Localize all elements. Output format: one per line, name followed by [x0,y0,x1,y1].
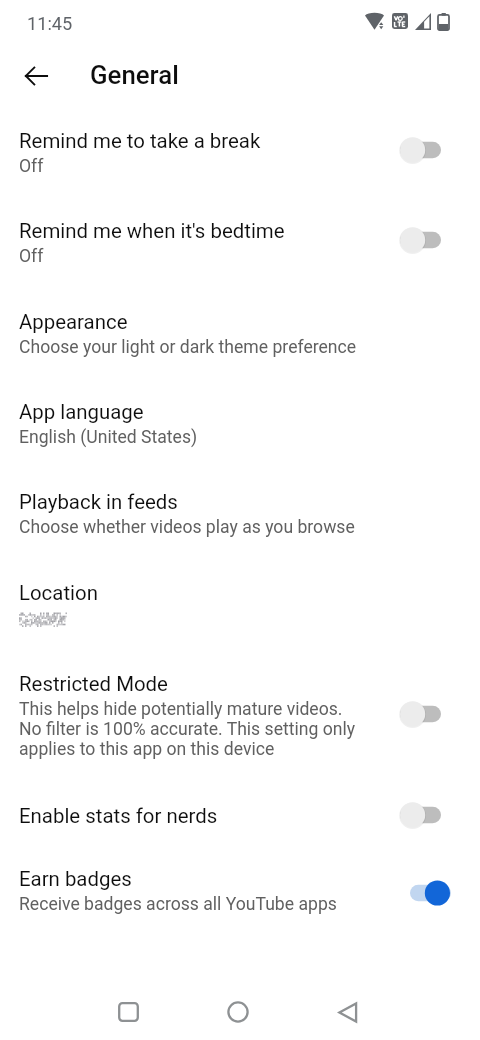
button[interactable]: Back [312,984,385,1040]
button[interactable]: Enable stats for nerds [0,776,480,839]
button[interactable]: Remind me to take a break [0,101,480,191]
staticText: Remind me when it's bedtime [19,219,285,243]
staticText: Restricted Mode [19,672,168,696]
staticText: English (United States) [19,427,198,448]
staticText: Earn badges [19,867,132,891]
button[interactable]: Recent apps [92,984,165,1040]
staticText: General [90,60,179,90]
button[interactable]: Off [392,796,458,834]
staticText: 11:45 [27,13,73,34]
button[interactable]: On [392,874,458,912]
staticText: Off [19,156,44,177]
button[interactable]: Home [201,984,274,1040]
staticText: Location [19,581,98,605]
button[interactable]: Playback in feeds [0,462,480,553]
staticText: Receive badges across all YouTube apps [19,894,337,915]
button[interactable]: Appearance [0,282,480,372]
staticText: Appearance [19,310,128,334]
staticText: Off [19,246,44,267]
button[interactable]: Off [392,695,458,733]
staticText: This helps hide potentially mature video… [19,699,356,759]
staticText: Choose your light or dark theme preferen… [19,337,357,358]
staticText: App language [19,400,144,424]
button[interactable]: App language [0,372,480,462]
button[interactable]: Location [0,553,480,644]
staticText: Enable stats for nerds [19,804,218,828]
button[interactable]: Restricted Mode [0,644,480,776]
button[interactable]: Remind me when it's bedtime [0,191,480,282]
button[interactable]: Earn badges [0,839,480,929]
button[interactable]: Off [392,131,458,169]
button[interactable]: Off [392,221,458,259]
staticText: Remind me to take a break [19,129,261,153]
staticText: Choose whether videos play as you browse [19,517,355,538]
button[interactable]: Back [13,53,59,99]
staticText: Playback in feeds [19,490,178,514]
